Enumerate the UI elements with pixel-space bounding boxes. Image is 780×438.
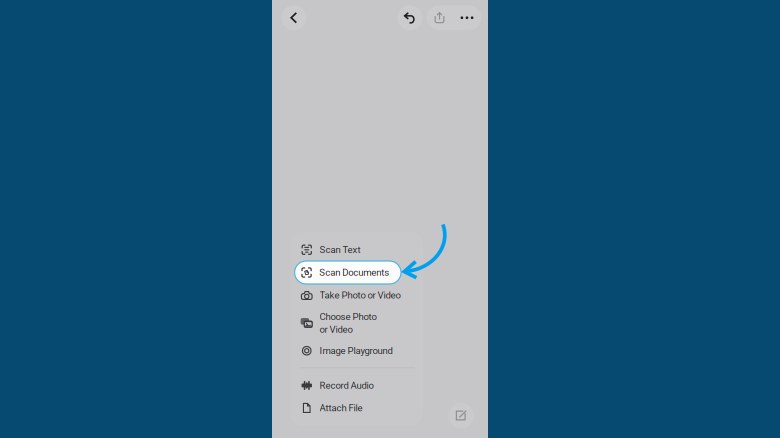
button[interactable]: More options	[452, 5, 481, 30]
button[interactable]: Image Playground	[290, 339, 423, 362]
staticText: Attach File	[319, 402, 362, 414]
staticText: Record Audio	[319, 380, 373, 391]
button[interactable]: Share	[426, 5, 452, 30]
button[interactable]: Choose Photo	[290, 306, 423, 339]
staticText: Choose Photo	[319, 311, 376, 322]
button[interactable]: Record Audio	[290, 374, 423, 397]
staticText: or Video	[319, 324, 352, 335]
button[interactable]: Back	[281, 5, 306, 30]
button[interactable]: Take Photo or Video	[290, 284, 423, 306]
button[interactable]: Scan Text	[290, 238, 423, 261]
button[interactable]: Compose	[448, 403, 474, 428]
button[interactable]: Undo	[397, 5, 422, 30]
button[interactable]: Scan Documents	[295, 261, 401, 284]
staticText: Scan Documents	[319, 267, 389, 278]
staticText: Scan Text	[319, 244, 360, 255]
staticText: Take Photo or Video	[319, 290, 400, 301]
staticText: Image Playground	[319, 345, 392, 356]
button[interactable]: Attach File	[290, 397, 423, 419]
